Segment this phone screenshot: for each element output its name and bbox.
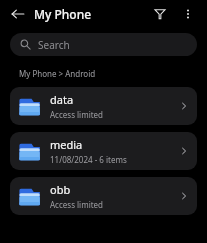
button[interactable]: My Phone > Android <box>19 68 96 79</box>
staticText: Access limited <box>50 199 104 210</box>
button[interactable]: Search <box>10 33 197 56</box>
button[interactable]: media <box>10 132 197 170</box>
staticText: My Phone > Android <box>19 68 96 79</box>
staticText: 11/08/2024 - 6 items <box>50 154 127 165</box>
staticText: Access limited <box>50 109 104 120</box>
staticText: obb <box>50 182 71 197</box>
staticText: My Phone <box>34 6 92 22</box>
button[interactable]: Back <box>8 4 28 24</box>
button[interactable]: data <box>10 87 197 125</box>
staticText: data <box>50 92 74 107</box>
staticText: media <box>50 137 83 152</box>
staticText: Search <box>38 38 70 52</box>
button[interactable]: More options <box>177 3 199 25</box>
button[interactable]: Filter <box>149 3 171 25</box>
button[interactable]: obb <box>10 177 197 215</box>
